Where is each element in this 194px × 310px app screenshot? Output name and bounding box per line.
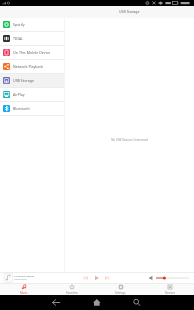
button[interactable]: On This Mobile Device — [0, 46, 64, 59]
button[interactable]: No Music Playing — [0, 272, 194, 283]
button[interactable]: Back — [48, 295, 64, 310]
staticText: Settings — [115, 291, 126, 295]
staticText: No USB Devices Connected — [111, 138, 148, 142]
button[interactable]: Favorites — [48, 283, 96, 295]
staticText: USB Storage — [13, 78, 34, 83]
staticText: On This Mobile Device — [13, 50, 51, 55]
staticText: Network Playback — [13, 64, 44, 69]
button[interactable]: Devices — [145, 283, 194, 295]
button[interactable]: Bluetooth — [0, 102, 64, 115]
staticText: No Music Playing — [14, 274, 35, 277]
staticText: TIDAL — [13, 36, 23, 41]
button[interactable]: USB Storage — [0, 74, 64, 87]
button[interactable]: Music — [0, 283, 48, 295]
staticText: Favorites — [66, 291, 78, 295]
staticText: AirPlay — [13, 92, 25, 97]
button[interactable]: AirPlay — [0, 88, 64, 101]
staticText: Music — [20, 291, 28, 295]
button[interactable]: Network Playback — [0, 60, 64, 73]
button[interactable]: Settings — [96, 283, 145, 295]
button[interactable]: Spotify — [0, 18, 64, 31]
staticText: USB Storage — [119, 9, 140, 14]
button[interactable]: TIDAL — [0, 32, 64, 45]
button[interactable]: Home — [89, 295, 105, 310]
staticText: Devices — [165, 291, 175, 295]
staticText: Spotify — [13, 22, 25, 27]
staticText: Bluetooth — [13, 106, 30, 111]
staticText: Living Stereo — [14, 278, 27, 281]
button[interactable]: Search — [129, 295, 145, 310]
